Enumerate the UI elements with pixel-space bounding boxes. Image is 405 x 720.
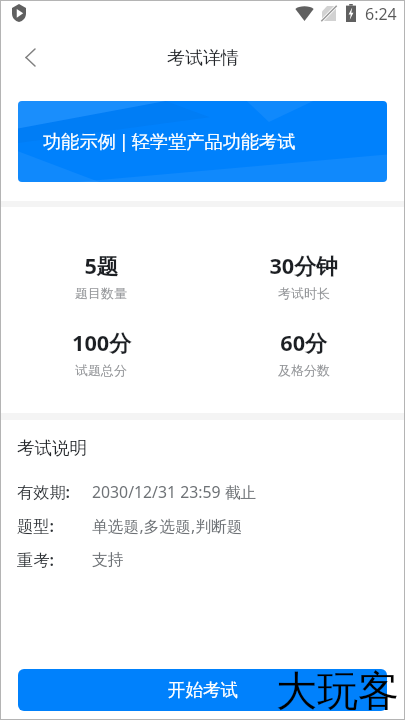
staticText: 题型: [17, 515, 54, 537]
staticText: 开始考试 [168, 679, 238, 701]
staticText: 重考: [17, 549, 54, 571]
staticText: 100分 [72, 328, 131, 358]
staticText: 有效期: [17, 481, 71, 503]
staticText: 考试说明 [17, 437, 87, 459]
staticText: 30分钟 [269, 251, 338, 281]
staticText: 考试时长 [278, 285, 330, 301]
staticText: 大玩客 [276, 666, 399, 718]
staticText: 2030/12/31 23:59 截止 [92, 481, 257, 503]
button[interactable]: 功能示例 | 轻学堂产品功能考试 [18, 101, 387, 182]
staticText: 题目数量 [75, 285, 127, 301]
staticText: 5题 [84, 251, 119, 281]
staticText: 试题总分 [75, 362, 127, 378]
staticText: 及格分数 [278, 362, 330, 378]
staticText: 6:24 [365, 3, 397, 25]
button[interactable]: Back [7, 34, 53, 80]
staticText: 支持 [92, 550, 124, 570]
staticText: 60分 [280, 328, 327, 358]
button[interactable]: 开始考试 [18, 669, 387, 711]
staticText: 功能示例 | 轻学堂产品功能考试 [43, 129, 296, 154]
staticText: 单选题,多选题,判断题 [92, 515, 243, 537]
staticText: 考试详情 [167, 47, 239, 70]
